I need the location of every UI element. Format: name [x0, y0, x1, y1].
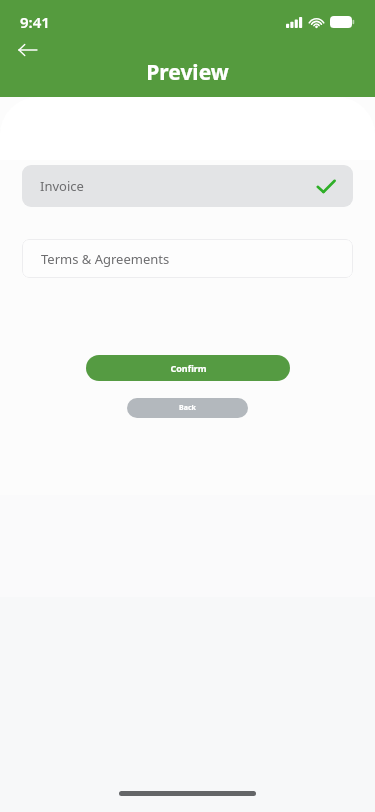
staticText: Preview — [146, 58, 229, 87]
button[interactable]: Back — [127, 398, 248, 418]
button[interactable]: Terms & Agreements — [22, 239, 353, 278]
staticText: Confirm — [170, 362, 207, 374]
button[interactable]: Back — [10, 38, 46, 62]
staticText: Terms & Agreements — [41, 250, 170, 268]
button[interactable]: Invoice — [22, 165, 353, 207]
staticText: 9:41 — [20, 12, 50, 32]
button[interactable]: Confirm — [86, 355, 290, 381]
staticText: Back — [179, 403, 196, 413]
staticText: Invoice — [40, 177, 84, 195]
